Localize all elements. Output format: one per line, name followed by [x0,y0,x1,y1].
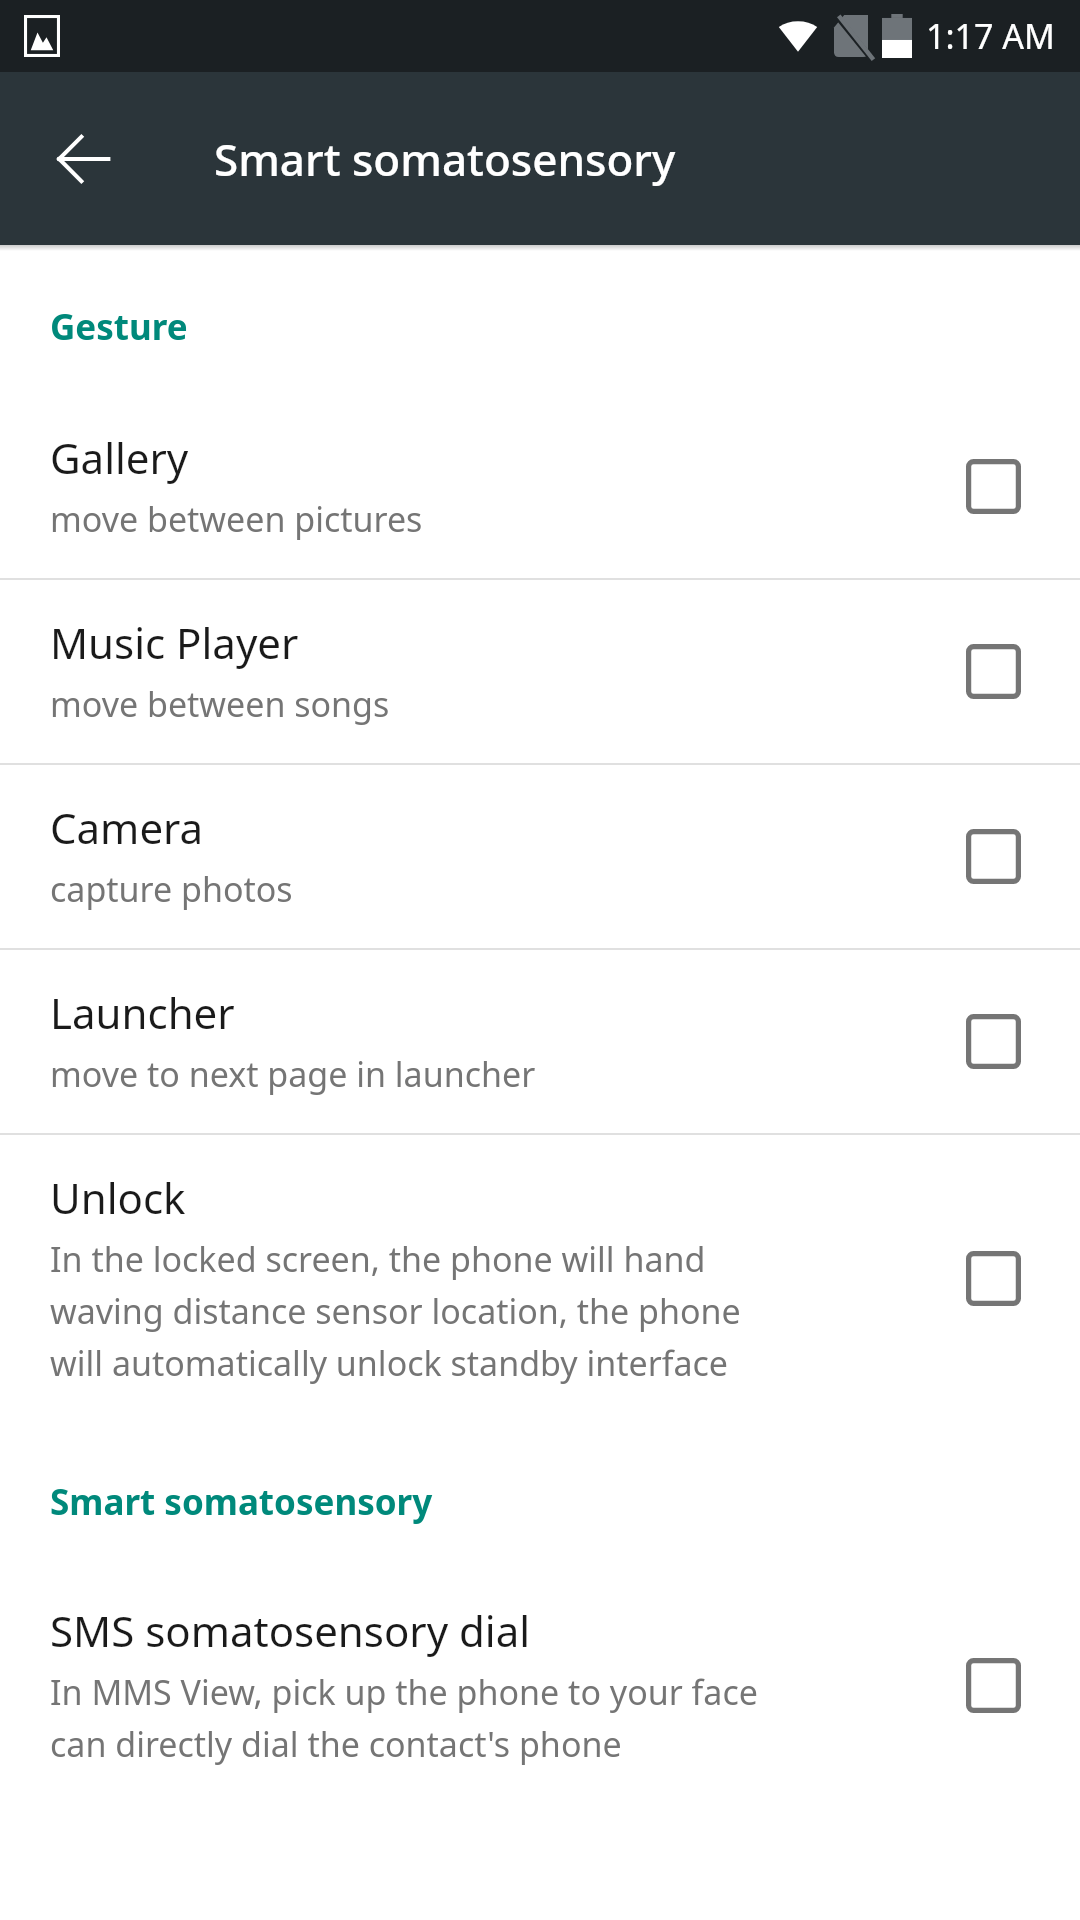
button[interactable]: Unlock [0,1135,1080,1422]
button[interactable]: Toggle setting [956,1004,1030,1078]
staticText: waving distance sensor location, the pho… [50,1288,741,1334]
staticText: In MMS View, pick up the phone to your f… [50,1669,758,1715]
staticText: move to next page in launcher [50,1051,536,1097]
button[interactable]: Music Player [0,580,1080,763]
button[interactable]: Toggle setting [956,449,1030,523]
staticText: can directly dial the contact's phone [50,1721,622,1767]
staticText: move between songs [50,681,390,727]
staticText: Gallery [50,429,189,486]
button[interactable]: Toggle setting [956,1648,1030,1722]
staticText: Gesture [50,303,188,351]
button[interactable]: Back [34,110,132,208]
staticText: capture photos [50,866,293,912]
staticText: Smart somatosensory [50,1478,433,1526]
staticText: move between pictures [50,496,423,542]
staticText: Launcher [50,984,235,1041]
staticText: 1:17 AM [926,13,1055,59]
button[interactable]: Toggle setting [956,819,1030,893]
staticText: Unlock [50,1169,186,1226]
staticText: Smart somatosensory [214,129,676,189]
button[interactable]: Toggle setting [956,1241,1030,1315]
staticText: Camera [50,799,204,856]
staticText: SMS somatosensory dial [50,1602,531,1659]
button[interactable]: Launcher [0,950,1080,1133]
button[interactable]: SMS somatosensory dial [0,1568,1080,1787]
staticText: Music Player [50,614,299,671]
button[interactable]: Camera [0,765,1080,948]
staticText: In the locked screen, the phone will han… [50,1236,706,1282]
button[interactable]: Gallery [0,395,1080,578]
button[interactable]: Toggle setting [956,634,1030,708]
staticText: will automatically unlock standby interf… [50,1340,729,1386]
